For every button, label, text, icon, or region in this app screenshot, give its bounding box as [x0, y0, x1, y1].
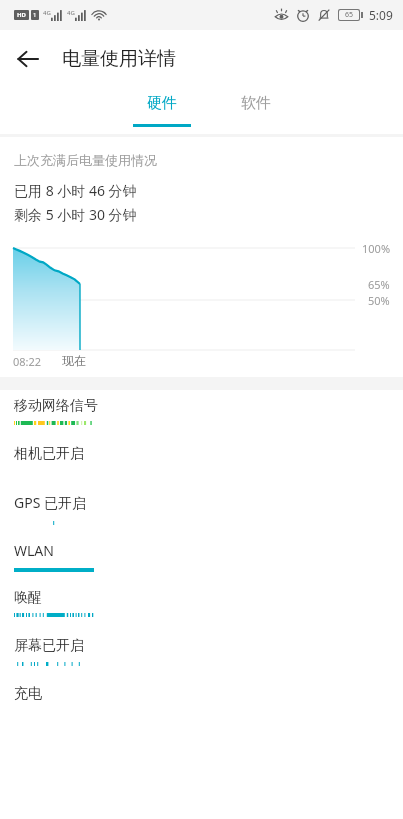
button[interactable]: Back	[8, 39, 48, 79]
button[interactable]: 移动网络信号	[0, 390, 403, 438]
button[interactable]: 屏幕已开启	[0, 630, 403, 678]
staticText: 上次充满后电量使用情况	[14, 152, 157, 168]
staticText: 移动网络信号	[14, 397, 98, 415]
staticText: 唤醒	[14, 589, 42, 607]
staticText: 100%	[362, 241, 391, 256]
staticText: 软件	[241, 94, 271, 113]
staticText: WLAN	[14, 541, 54, 560]
button[interactable]: 充电	[0, 678, 403, 726]
staticText: 4G	[43, 9, 51, 17]
staticText: 屏幕已开启	[14, 637, 84, 655]
staticText: GPS 已开启	[14, 493, 86, 512]
button[interactable]: 相机已开启	[0, 438, 403, 486]
staticText: 充电	[14, 685, 42, 703]
staticText: 1	[33, 11, 37, 19]
button[interactable]: WLAN	[0, 534, 403, 582]
button[interactable]: 唤醒	[0, 582, 403, 630]
button[interactable]: 软件	[227, 88, 285, 113]
button[interactable]: GPS 已开启	[0, 486, 403, 534]
staticText: 已用 8 小时 46 分钟	[14, 181, 137, 200]
staticText: 65	[345, 10, 354, 20]
staticText: 65%	[368, 277, 390, 292]
staticText: 电量使用详情	[62, 47, 176, 71]
button[interactable]: 硬件	[119, 88, 205, 127]
staticText: 50%	[368, 293, 390, 308]
staticText: 5:09	[369, 7, 393, 23]
staticText: 08:22	[13, 354, 42, 369]
staticText: 硬件	[147, 94, 177, 113]
staticText: 剩余 5 小时 30 分钟	[14, 205, 137, 224]
staticText: 现在	[62, 353, 86, 368]
staticText: 4G	[67, 9, 75, 17]
staticText: HD	[17, 11, 26, 19]
staticText: 相机已开启	[14, 445, 84, 463]
